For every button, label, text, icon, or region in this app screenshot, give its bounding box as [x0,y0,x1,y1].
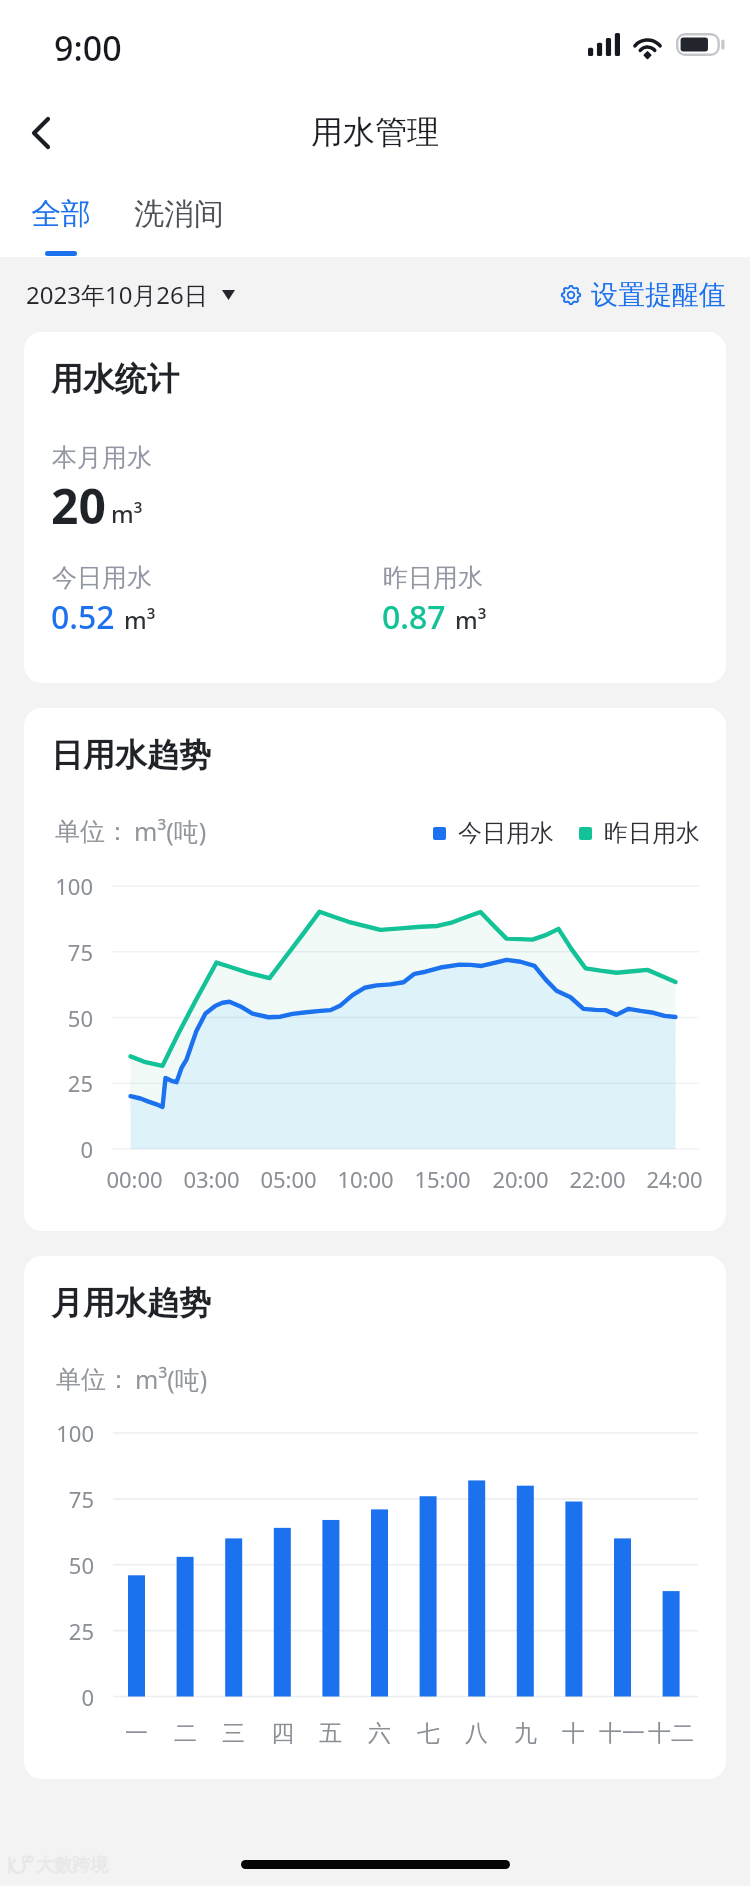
staticText: 15:00 [414,1164,471,1194]
staticText: 单位： [55,816,130,847]
staticText: 单位： [56,1364,131,1395]
staticText: 大數跨境 [36,1854,108,1877]
button[interactable]: 洗消间 [124,182,234,257]
staticText: m³ [124,603,156,636]
staticText: 03:00 [183,1164,240,1194]
staticText: 100 [56,1418,94,1448]
staticText: 洗消间 [134,195,224,233]
staticText: m³ [455,603,487,636]
staticText: 昨日用水 [604,818,700,848]
staticText: 25 [68,1616,94,1646]
staticText: 全部 [31,195,91,233]
staticText: 10:00 [337,1164,394,1194]
staticText: 2023年10月26日 [26,278,208,311]
staticText: 0 [80,1134,93,1164]
staticText: 100 [55,871,93,901]
staticText: 05:00 [260,1164,317,1194]
staticText: 十一 [599,1719,645,1748]
staticText: m³(吨) [134,814,207,848]
staticText: 用水管理 [311,112,439,152]
staticText: 0.87 [382,595,446,639]
button[interactable]: 全部 [12,182,109,257]
staticText: 四 [271,1719,294,1748]
staticText: 一 [125,1719,148,1748]
staticText: 用水统计 [51,359,179,399]
staticText: 24:00 [646,1164,703,1194]
staticText: 十二 [648,1719,694,1748]
staticText: 22:00 [569,1164,626,1194]
staticText: 九 [514,1719,537,1748]
staticText: 20:00 [492,1164,549,1194]
button[interactable]: Back [10,102,72,164]
staticText: 0.52 [51,595,115,639]
staticText: 本月用水 [52,442,152,473]
staticText: m³ [111,497,143,530]
staticText: 日用水趋势 [51,735,211,775]
staticText: 昨日用水 [383,562,483,593]
staticText: 五 [319,1719,342,1748]
staticText: 设置提醒值 [591,278,726,312]
button[interactable]: 设置提醒值 [552,272,734,318]
staticText: 八 [465,1719,488,1748]
staticText: m³(吨) [135,1362,208,1396]
staticText: 50 [68,1550,94,1580]
button[interactable]: 2023年10月26日 [18,272,243,317]
staticText: 9:00 [54,25,122,71]
staticText: 00:00 [106,1164,163,1194]
staticText: 20 [51,473,106,538]
staticText: 六 [368,1719,391,1748]
staticText: 50 [67,1003,93,1033]
staticText: 七 [417,1719,440,1748]
staticText: 今日用水 [458,818,554,848]
staticText: 0 [81,1682,94,1712]
staticText: 75 [67,937,93,967]
staticText: 今日用水 [52,562,152,593]
staticText: 十 [562,1719,585,1748]
staticText: 三 [222,1719,245,1748]
staticText: 75 [68,1484,94,1514]
staticText: 月用水趋势 [51,1283,211,1323]
staticText: 二 [174,1719,197,1748]
staticText: 25 [67,1068,93,1098]
